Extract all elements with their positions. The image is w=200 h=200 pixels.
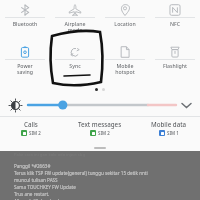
button[interactable]: Power saving [0, 42, 50, 84]
button[interactable]: Bluetooth [0, 0, 50, 42]
staticText: Calls [24, 120, 38, 128]
button[interactable]: Mobile data [138, 117, 200, 144]
staticText: Panggil *#2663# [14, 163, 51, 169]
staticText: Terus klik TSP FW update(general) tunggu… [14, 170, 148, 176]
button[interactable]: NFC [150, 0, 200, 42]
staticText: Flashlight [150, 62, 200, 69]
button[interactable] [24, 96, 178, 114]
staticText: NFC [150, 20, 200, 27]
staticText: Sama TOUCHKEY FW Update [14, 184, 76, 190]
staticText: Mobile data [151, 120, 187, 128]
staticText: Mobile hotspot [100, 62, 150, 75]
button[interactable]: Location [100, 0, 150, 42]
staticText: Trus ane restart. [14, 191, 50, 197]
staticText: Bluetooth [0, 20, 50, 27]
button[interactable]: Expand brightness settings [178, 97, 194, 113]
button[interactable]: Brightness [6, 96, 24, 114]
staticText: Alhamdulillah solved [14, 198, 59, 200]
staticText: SIM 2 [98, 130, 110, 136]
staticText: Location [100, 20, 150, 27]
staticText: Power saving [0, 62, 50, 75]
staticText: Text messages [78, 120, 122, 128]
button[interactable]: Airplane mode [50, 0, 100, 42]
button[interactable]: Flashlight [150, 42, 200, 84]
staticText: muncul tulisan PASS [14, 177, 58, 183]
staticText: Sync [50, 62, 100, 69]
button[interactable]: Mobile hotspot [100, 42, 150, 84]
button[interactable]: Text messages [61, 117, 138, 144]
staticText: Airplane mode [50, 20, 100, 33]
staticText: SIM 1 [167, 130, 179, 136]
button[interactable]: Calls [0, 117, 61, 144]
button[interactable]: Sync [50, 42, 100, 84]
staticText: SIM 2 [29, 130, 41, 136]
button[interactable]: Collapse panel [94, 147, 106, 149]
